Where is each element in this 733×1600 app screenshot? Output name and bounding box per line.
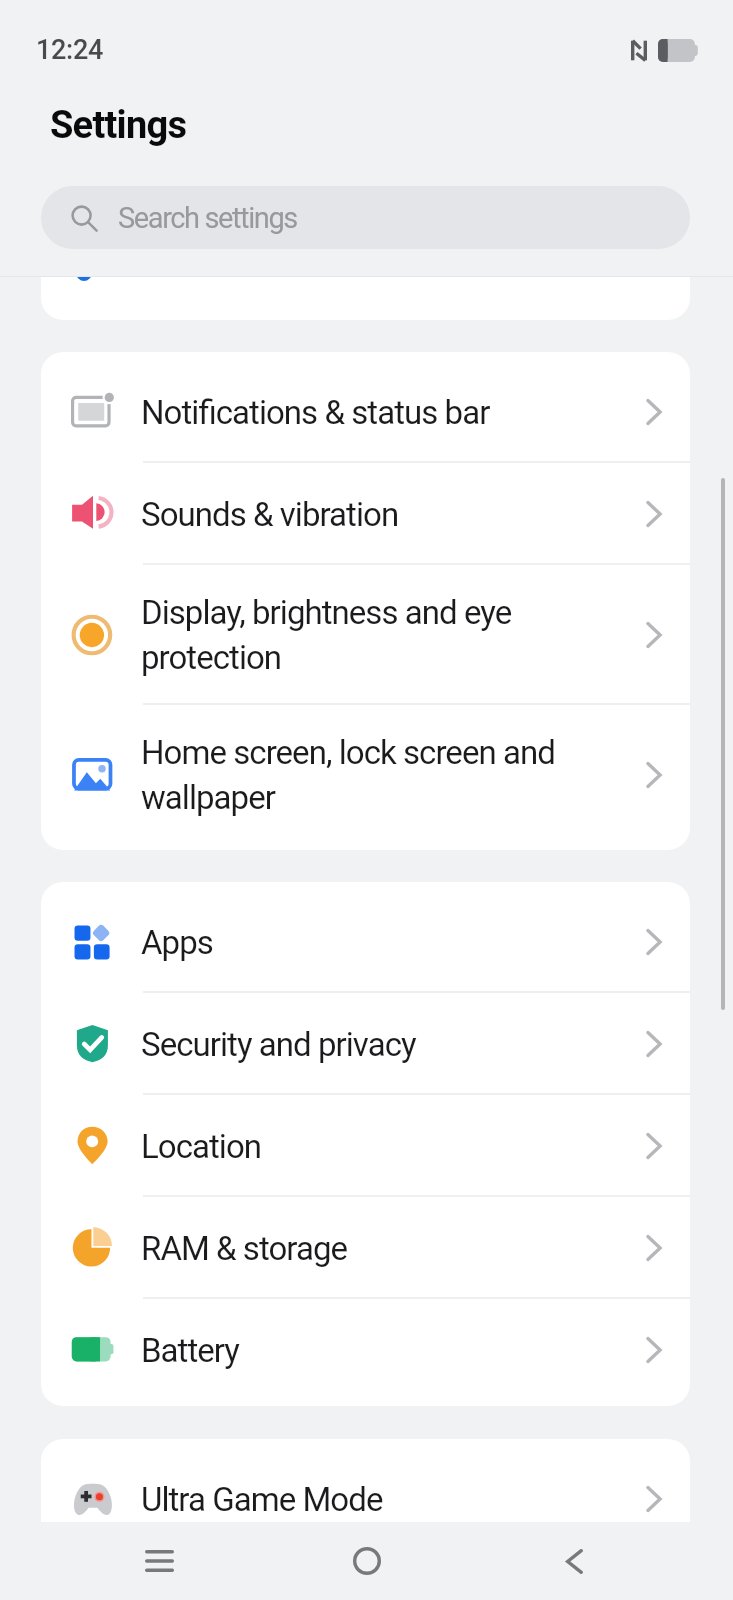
staticText: Settings — [50, 103, 187, 148]
staticText: Home screen, lock screen and wallpaper — [141, 733, 592, 817]
button[interactable]: Back — [526, 1522, 622, 1600]
button[interactable]: Notifications & status bar — [41, 361, 690, 463]
staticText: Security and privacy — [141, 1025, 592, 1064]
button[interactable]: Home — [319, 1522, 415, 1600]
button[interactable]: Security and privacy — [41, 993, 690, 1095]
staticText: Ultra Game Mode — [141, 1480, 592, 1519]
staticText: Search settings — [118, 201, 297, 235]
button[interactable]: Recent apps — [111, 1522, 207, 1600]
staticText: Notifications & status bar — [141, 393, 592, 432]
button[interactable]: RAM & storage — [41, 1197, 690, 1299]
button[interactable]: Display, brightness and eye protection — [41, 565, 690, 705]
button[interactable]: Apps — [41, 891, 690, 993]
button[interactable]: Location — [41, 1095, 690, 1197]
button[interactable]: Sounds & vibration — [41, 463, 690, 565]
button[interactable]: Battery — [41, 1299, 690, 1401]
staticText: RAM & storage — [141, 1229, 592, 1268]
staticText: Location — [141, 1127, 592, 1166]
button[interactable]: Home screen, lock screen and wallpaper — [41, 705, 690, 845]
staticText: Display, brightness and eye protection — [141, 593, 592, 677]
staticText: Apps — [141, 923, 592, 962]
staticText: Battery — [141, 1331, 592, 1370]
button[interactable]: Search settings — [41, 186, 690, 249]
staticText: 12:24 — [36, 34, 104, 66]
staticText: Sounds & vibration — [141, 495, 592, 534]
button[interactable]: Ultra Game Mode — [41, 1448, 690, 1550]
